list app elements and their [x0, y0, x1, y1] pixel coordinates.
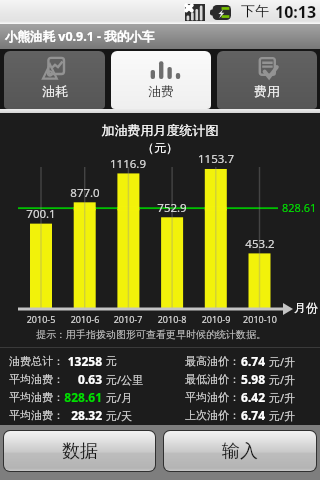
staticText: 6.74 — [240, 407, 265, 423]
staticText: 油耗 — [42, 83, 68, 99]
staticText: 2010-9 — [190, 313, 242, 325]
button[interactable]: 油费 — [111, 51, 211, 109]
other: Signal strength — [185, 4, 205, 21]
staticText: 877.0 — [61, 185, 109, 201]
staticText: 元/公里 — [106, 372, 144, 387]
button[interactable]: 油耗 — [4, 51, 105, 109]
staticText: 最低油价： — [185, 372, 240, 386]
staticText: 0.63 — [64, 371, 102, 387]
staticText: （元） — [0, 140, 320, 155]
other: Battery charging — [210, 5, 231, 20]
staticText: 6.42 — [240, 389, 265, 405]
staticText: 元/升 — [269, 372, 296, 387]
staticText: 700.1 — [17, 206, 65, 222]
staticText: 2010-6 — [59, 313, 111, 325]
button[interactable]: 输入 — [164, 431, 316, 471]
staticText: 元/升 — [269, 390, 296, 405]
staticText: 2010-5 — [15, 313, 67, 325]
staticText: 平均油费： — [9, 372, 64, 386]
staticText: 输入 — [222, 440, 258, 463]
staticText: 小熊油耗 v0.9.1 - 我的小车 — [5, 28, 155, 45]
staticText: 828.61 — [282, 200, 317, 215]
staticText: 月份 — [294, 300, 318, 315]
staticText: 6.74 — [240, 353, 265, 369]
staticText: 2010-8 — [146, 313, 198, 325]
staticText: 元/升 — [269, 354, 296, 369]
staticText: 平均油费： — [9, 390, 64, 404]
staticText: 最高油价： — [185, 354, 240, 368]
staticText: 平均油价： — [185, 390, 240, 404]
staticText: 平均油费： — [9, 408, 64, 422]
staticText: 828.61 — [64, 389, 102, 405]
staticText: 油费 — [148, 83, 174, 99]
button[interactable]: 费用 — [217, 51, 317, 109]
staticText: 10:13 — [275, 1, 317, 23]
staticText: 1116.9 — [104, 156, 152, 172]
staticText: 元/升 — [269, 408, 296, 423]
staticText: 2010-10 — [234, 313, 286, 325]
staticText: 752.9 — [148, 200, 196, 216]
button[interactable]: 数据 — [4, 431, 155, 471]
staticText: 费用 — [254, 83, 280, 99]
staticText: 5.98 — [240, 371, 265, 387]
staticText: 元 — [106, 354, 117, 368]
staticText: 453.2 — [236, 236, 284, 252]
staticText: 加油费用月度统计图 — [0, 122, 320, 138]
staticText: 2010-7 — [102, 313, 154, 325]
staticText: 13258 — [64, 353, 102, 369]
staticText: 油费总计： — [9, 354, 64, 368]
staticText: 1153.7 — [192, 151, 240, 167]
staticText: 上次油价： — [185, 408, 240, 422]
staticText: 数据 — [62, 440, 98, 463]
staticText: 元/天 — [106, 408, 133, 423]
staticText: 下午 — [241, 3, 269, 21]
staticText: 提示：用手指拨动图形可查看更早时候的统计数据。 — [36, 328, 266, 341]
staticText: 28.32 — [64, 407, 102, 423]
staticText: 元/月 — [106, 390, 133, 405]
